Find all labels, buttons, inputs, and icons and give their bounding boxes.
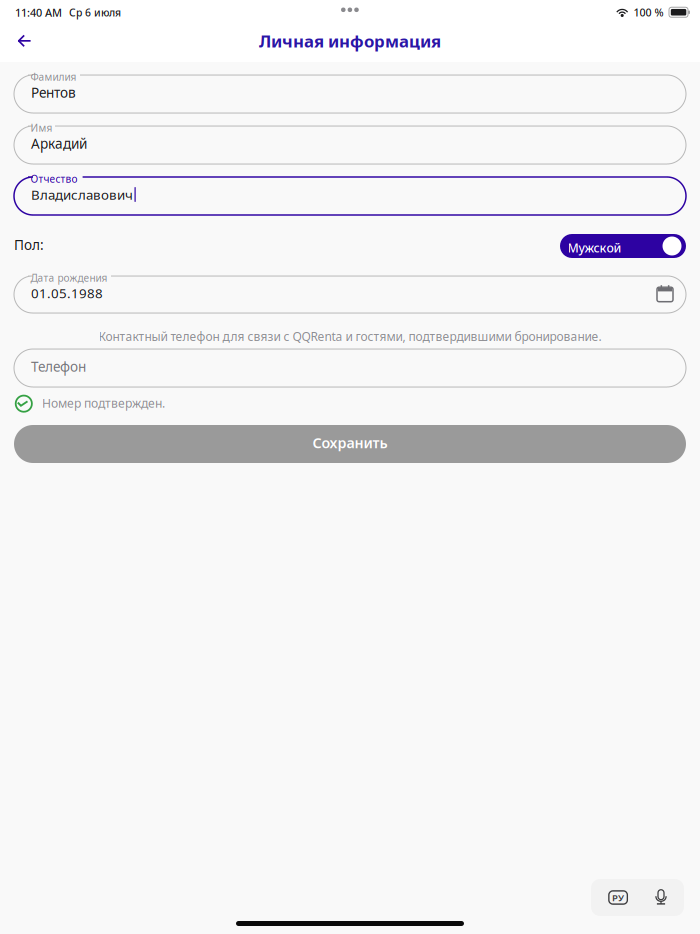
button[interactable]: Сохранить [14, 425, 686, 463]
staticText: Отчество [30, 172, 77, 186]
staticText: Ср 6 июля [69, 5, 121, 20]
staticText: Телефон [31, 357, 86, 376]
staticText: 11:40 AM [15, 5, 62, 20]
staticText: Контактный телефон для связи с QQRenta и… [98, 328, 601, 344]
button[interactable]: Диктовка [655, 889, 667, 905]
staticText: Имя [30, 121, 52, 135]
button[interactable]: Язык клавиатуры [608, 889, 628, 905]
staticText: Номер подтвержден. [42, 395, 165, 411]
staticText: Владиславович [31, 185, 133, 204]
staticText: Аркадий [31, 134, 87, 153]
staticText: Мужской [567, 239, 621, 256]
staticText: Рентов [31, 83, 76, 102]
staticText: РУ [612, 891, 624, 904]
staticText: Пол: [14, 235, 44, 254]
staticText: Сохранить [312, 433, 387, 452]
button[interactable]: Назад [4, 22, 44, 60]
staticText: Личная информация [259, 30, 441, 52]
button[interactable]: Мужской [560, 234, 686, 258]
staticText: Дата рождения [30, 271, 107, 285]
staticText: Фамилия [30, 70, 76, 84]
staticText: 01.05.1988 [31, 284, 103, 302]
staticText: 100 % [633, 5, 663, 19]
